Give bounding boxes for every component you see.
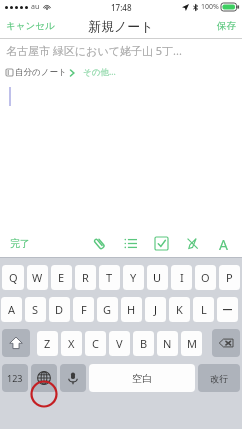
staticText: K [176,302,183,317]
button[interactable]: E [51,265,72,290]
button[interactable]: 123 [2,364,28,392]
staticText: M [187,336,197,351]
staticText: 名古屋市 緑区において姥子山 5丁... [6,43,182,58]
staticText: E [58,270,65,285]
button[interactable]: G [97,297,118,322]
button[interactable]: J [145,297,166,322]
staticText: 新規ノート [88,18,154,34]
button[interactable]: I [171,265,192,290]
staticText: O [201,270,210,285]
staticText: ー [222,303,233,317]
button[interactable]: Checklist [153,235,170,252]
button[interactable]: X [61,331,82,356]
button[interactable]: Shift [2,329,30,357]
button[interactable]: W [27,265,48,290]
staticText: D [55,302,64,317]
button[interactable]: K [169,297,190,322]
staticText: X [68,336,75,351]
staticText: 17:48 [111,2,132,13]
button[interactable]: V [109,331,130,356]
staticText: Z [44,336,51,351]
button[interactable]: Draw [184,235,201,252]
staticText: T [106,270,113,285]
staticText: キャンセル [6,20,55,32]
staticText: H [127,302,136,317]
staticText: G [103,302,112,317]
staticText: P [226,270,233,285]
staticText: Y [130,270,137,285]
staticText: I [180,270,184,285]
button[interactable]: B [133,331,154,356]
button[interactable]: Backspace [212,329,240,357]
staticText: 改行 [210,373,228,384]
button[interactable]: U [147,265,168,290]
button[interactable]: A [1,297,22,322]
button[interactable]: R [75,265,96,290]
staticText: B [140,336,148,351]
button[interactable]: F [73,297,94,322]
staticText: その他... [83,66,116,78]
button[interactable]: Dictation [60,364,86,392]
staticText: W [32,270,43,285]
staticText: V [116,336,123,351]
staticText: A [219,235,228,252]
button[interactable]: Z [37,331,58,356]
button[interactable]: O [195,265,216,290]
button[interactable]: P [219,265,240,290]
staticText: L [201,302,207,317]
staticText: 空白 [132,372,152,385]
staticText: C [92,336,99,351]
staticText: S [32,302,39,317]
button[interactable]: L [193,297,214,322]
button[interactable]: キャンセル [0,16,61,36]
button[interactable]: ー [217,297,238,322]
staticText: Q [9,270,18,285]
button[interactable]: D [49,297,70,322]
staticText: A [8,302,16,317]
button[interactable]: 完了 [4,233,36,254]
staticText: F [81,302,87,317]
button[interactable]: Next keyboard [31,364,57,392]
staticText: 保存 [217,20,236,32]
button[interactable]: 保存 [211,16,242,36]
button[interactable]: N [157,331,178,356]
button[interactable]: Bulleted list [122,235,139,252]
button[interactable]: その他... [83,64,116,80]
button[interactable]: Format text [215,235,232,252]
button[interactable]: C [85,331,106,356]
staticText: J [154,302,158,317]
staticText: U [153,270,162,285]
button[interactable]: Y [123,265,144,290]
staticText: N [163,336,172,351]
staticText: 完了 [10,237,30,250]
button[interactable]: 自分のノート [6,65,75,80]
button[interactable]: H [121,297,142,322]
button[interactable]: S [25,297,46,322]
staticText: R [82,270,89,285]
button[interactable]: M [181,331,202,356]
button[interactable]: 空白 [89,364,195,392]
button[interactable]: T [99,265,120,290]
staticText: 123 [7,372,23,384]
staticText: 自分のノート [15,67,67,78]
button[interactable]: Q [2,265,24,290]
staticText: au [31,2,40,12]
staticText: 100% [201,2,219,12]
button[interactable]: Attach [91,235,108,252]
button[interactable]: 改行 [198,364,240,392]
